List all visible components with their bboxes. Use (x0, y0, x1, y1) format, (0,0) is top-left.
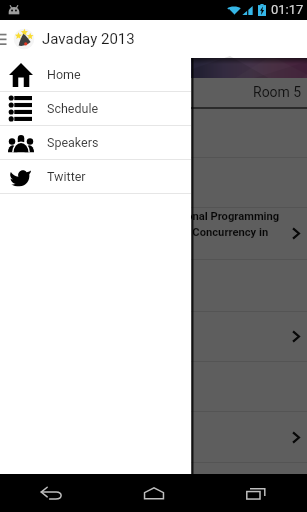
staticText: Speakers (47, 135, 99, 150)
staticText: Schedule (47, 101, 99, 116)
staticText: Javaday 2013 (42, 30, 135, 48)
button[interactable] (0, 109, 307, 158)
button[interactable]: Speakers (0, 126, 191, 160)
staticText: and Concurrency in (171, 226, 269, 239)
button[interactable] (0, 158, 307, 208)
button[interactable]: Schedule (0, 92, 191, 126)
button[interactable]: Home (0, 58, 191, 92)
button[interactable] (0, 260, 307, 312)
button[interactable] (0, 362, 307, 412)
staticText: Twitter (47, 169, 86, 184)
button[interactable]: Open navigation drawer (0, 20, 13, 58)
button[interactable]: Home (103, 474, 205, 512)
staticText: Room 5 (253, 84, 302, 100)
button[interactable]: Recent apps (205, 474, 307, 512)
button[interactable]: Back (0, 474, 103, 512)
staticText: Home (47, 67, 81, 82)
button[interactable] (0, 312, 307, 362)
staticText: 01:17 (271, 2, 304, 17)
button[interactable]: Functional Programming (0, 208, 307, 260)
button[interactable] (0, 412, 307, 463)
button[interactable]: Twitter (0, 160, 191, 194)
staticText: Functional Programming (155, 210, 280, 223)
